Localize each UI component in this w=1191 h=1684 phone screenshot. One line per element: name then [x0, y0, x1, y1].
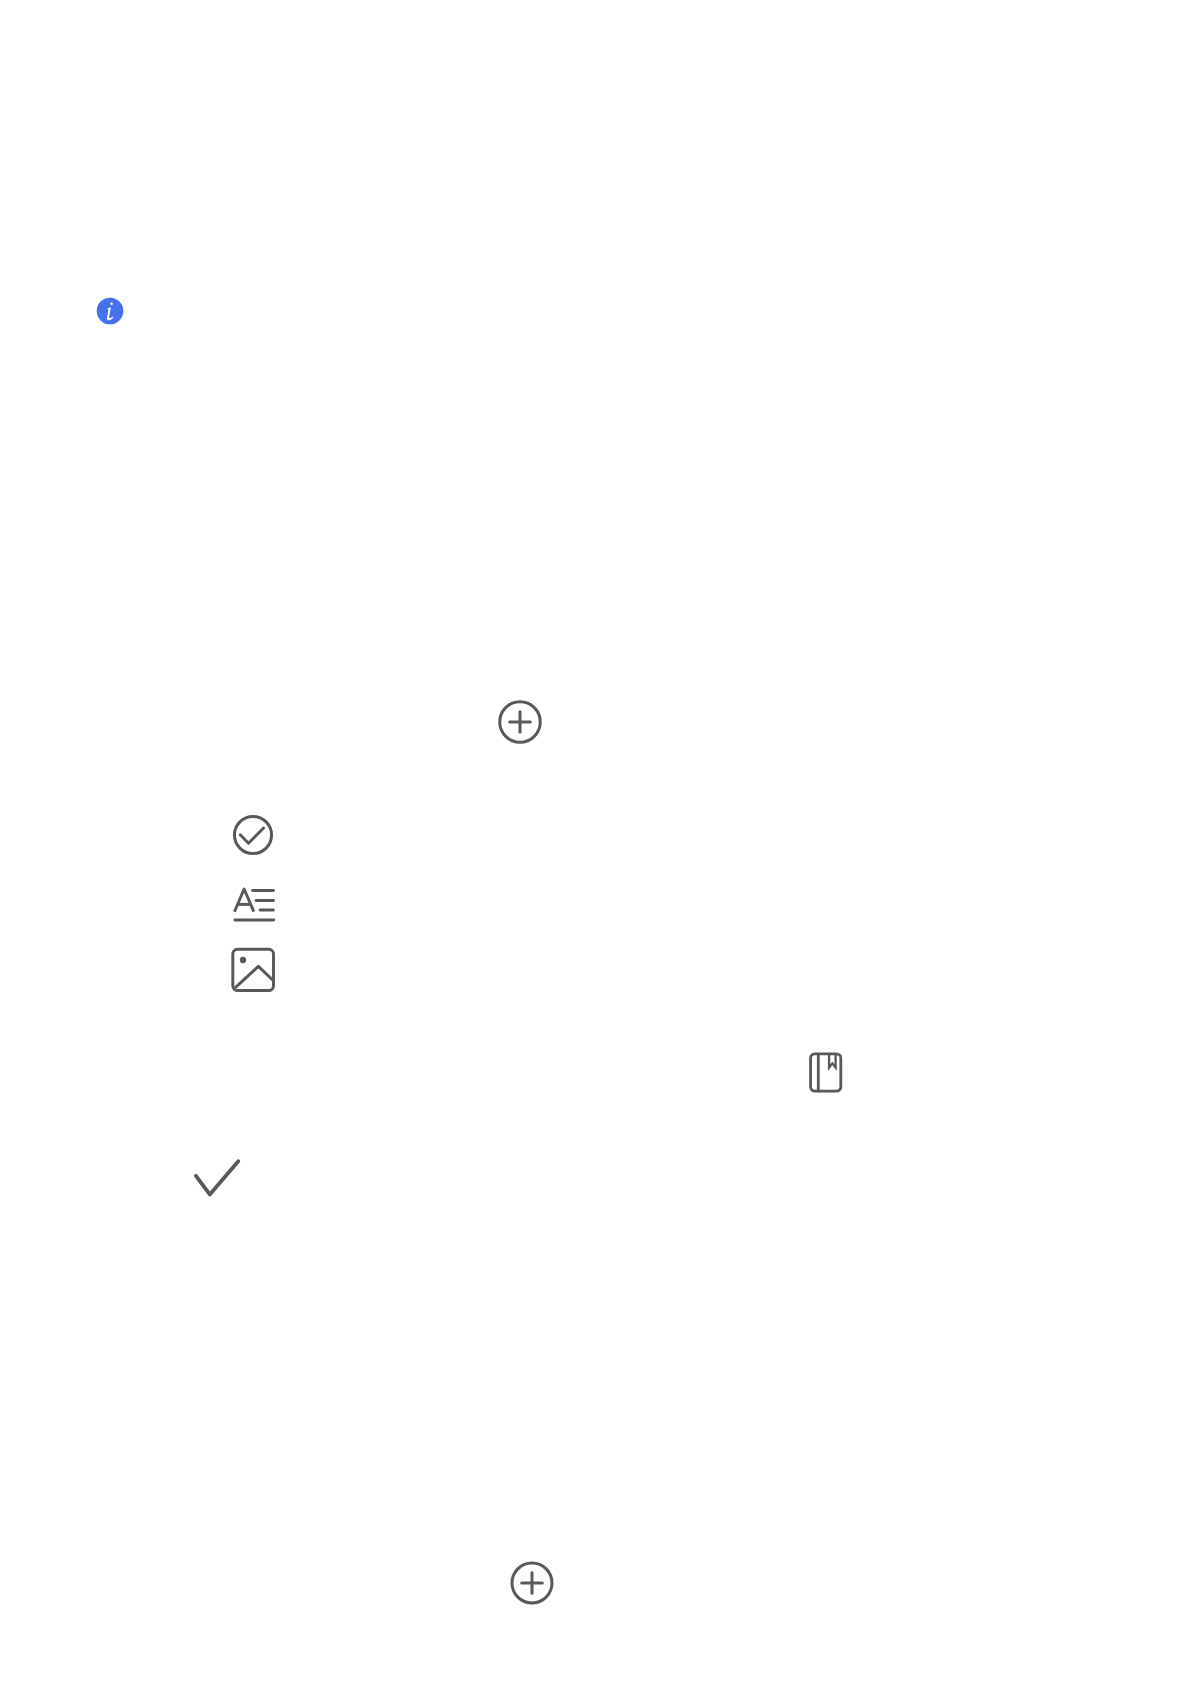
button[interactable]: Information [94, 295, 126, 327]
button[interactable]: Checkbox [225, 807, 281, 863]
button[interactable]: Notebook [804, 1047, 850, 1099]
button[interactable]: Add [492, 694, 548, 750]
button[interactable]: Add item [504, 1555, 560, 1611]
button[interactable]: Text formatting [228, 880, 282, 928]
button[interactable]: Insert image [226, 942, 282, 998]
button[interactable]: Done [186, 1150, 248, 1206]
